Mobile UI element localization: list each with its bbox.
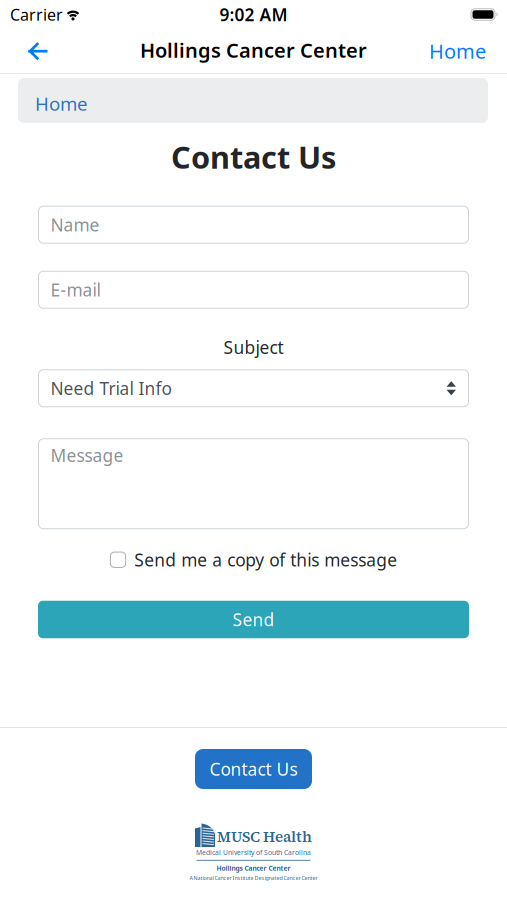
button[interactable]: Back xyxy=(0,30,48,71)
staticText: Contact Us xyxy=(171,136,336,177)
staticText: Need Trial Info xyxy=(50,377,171,400)
staticText: Medical University of South Carolina xyxy=(196,848,311,857)
button[interactable]: Home xyxy=(429,28,507,74)
staticText: E-mail xyxy=(50,278,100,301)
staticText: A National Cancer Institute Designated C… xyxy=(189,874,317,882)
staticText: Hollings Cancer Center xyxy=(216,864,290,873)
staticText: Contact Us xyxy=(209,757,297,780)
button[interactable]: Message xyxy=(0,438,507,529)
button[interactable]: Contact Us xyxy=(195,749,312,789)
button[interactable]: Home xyxy=(0,78,507,123)
staticText: 9:02 AM xyxy=(219,3,287,26)
staticText: Carrier xyxy=(10,4,63,25)
staticText: Hollings Cancer Center xyxy=(140,37,367,63)
staticText: Message xyxy=(50,444,123,467)
staticText: Send xyxy=(232,608,274,631)
staticText: Home xyxy=(429,38,486,64)
button[interactable]: Need Trial Info xyxy=(0,369,507,407)
button[interactable]: Send me a copy of this message xyxy=(110,548,397,571)
staticText: Name xyxy=(50,213,99,236)
button[interactable]: Send xyxy=(0,601,507,638)
button[interactable]: E-mail xyxy=(0,271,507,309)
staticText: Home xyxy=(35,91,88,116)
button[interactable]: Name xyxy=(0,206,507,244)
staticText: Subject xyxy=(223,336,283,359)
staticText: MUSC Health xyxy=(217,827,312,847)
staticText: Send me a copy of this message xyxy=(134,548,397,571)
